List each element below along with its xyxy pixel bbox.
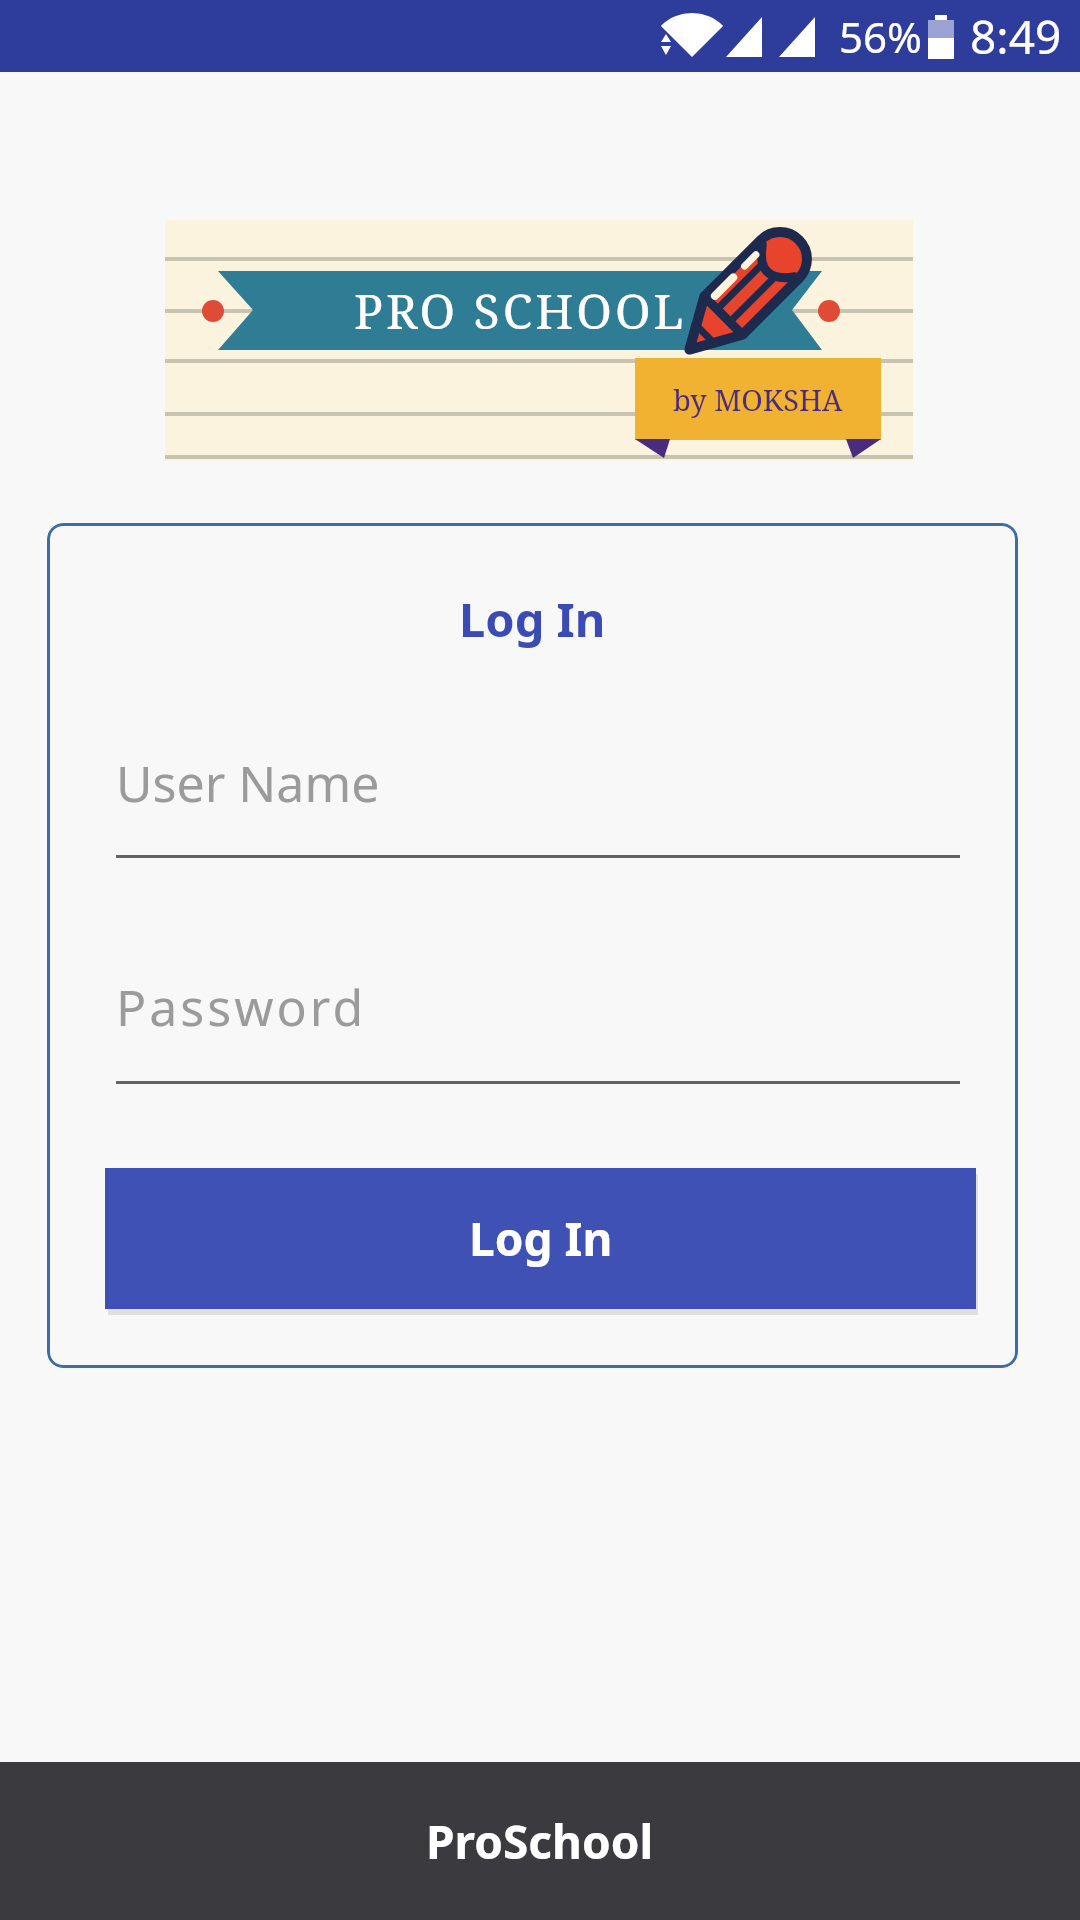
staticText: Log In	[459, 587, 606, 651]
staticText: Log In	[469, 1207, 613, 1270]
staticText: PRO SCHOOL	[354, 278, 687, 343]
staticText: 8:49	[970, 5, 1062, 68]
staticText: Password	[116, 973, 367, 1041]
staticText: by MOKSHA	[673, 380, 843, 419]
staticText: ProSchool	[426, 1810, 654, 1873]
staticText: User Name	[116, 749, 380, 817]
button[interactable]: Log In	[105, 1168, 976, 1309]
button[interactable]: Password	[116, 949, 960, 1084]
button[interactable]: User Name	[116, 723, 960, 858]
staticText: 56%	[839, 8, 922, 65]
